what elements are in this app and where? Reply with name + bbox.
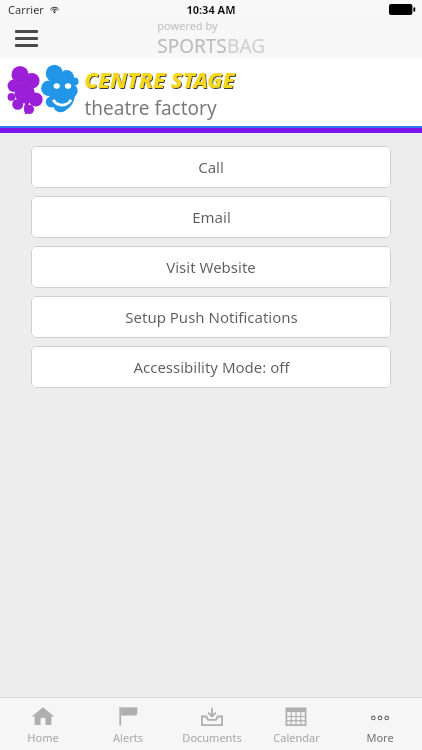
button[interactable]: Calendar (254, 698, 338, 750)
staticText: Documents (182, 730, 242, 745)
staticText: Email (192, 207, 231, 227)
staticText: Calendar (273, 730, 320, 745)
staticText: Setup Push Notifications (125, 307, 298, 327)
button[interactable]: Menu (8, 20, 44, 56)
staticText: Carrier (8, 2, 44, 17)
button[interactable]: More (338, 698, 422, 750)
button[interactable]: Setup Push Notifications (31, 296, 391, 338)
staticText: BAG (227, 33, 265, 58)
button[interactable]: Email (31, 196, 391, 238)
button[interactable]: Visit Website (31, 246, 391, 288)
staticText: More (366, 730, 394, 745)
staticText: Alerts (113, 730, 143, 745)
staticText: CENTRE STAGE (85, 65, 236, 95)
staticText: theatre factory (84, 95, 217, 121)
button[interactable]: Accessibility Mode: off (31, 346, 391, 388)
button[interactable]: Alerts (85, 698, 170, 750)
button[interactable]: Documents (170, 698, 254, 750)
staticText: 10:34 AM (186, 2, 236, 17)
staticText: CENTRE STAGE (84, 64, 235, 94)
button[interactable]: Home (0, 698, 85, 750)
staticText: Home (27, 730, 59, 745)
button[interactable]: Call (31, 146, 391, 188)
staticText: Call (198, 157, 224, 177)
staticText: Accessibility Mode: off (133, 357, 290, 377)
staticText: Visit Website (166, 257, 256, 277)
staticText: powered by (157, 18, 218, 33)
staticText: SPORTS (157, 33, 227, 58)
